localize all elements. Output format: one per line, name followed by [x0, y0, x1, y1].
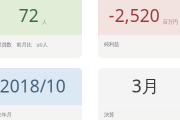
- button[interactable]: 2018/10: [0, 68, 82, 120]
- button[interactable]: -2,520: [98, 0, 180, 58]
- staticText: -2,520: [109, 4, 160, 27]
- button[interactable]: 3月: [98, 68, 180, 120]
- staticText: 2018/10: [0, 74, 66, 97]
- staticText: 3月: [132, 74, 159, 97]
- button[interactable]: 72: [0, 0, 82, 58]
- staticText: 従業員数 前月比 ±0人: [0, 41, 47, 48]
- staticText: 設立年月: [0, 111, 11, 118]
- staticText: 百万円: [163, 19, 178, 25]
- staticText: 人: [42, 19, 47, 25]
- staticText: 純利益: [104, 41, 119, 48]
- staticText: 72: [19, 4, 39, 27]
- staticText: 決算: [104, 111, 114, 118]
